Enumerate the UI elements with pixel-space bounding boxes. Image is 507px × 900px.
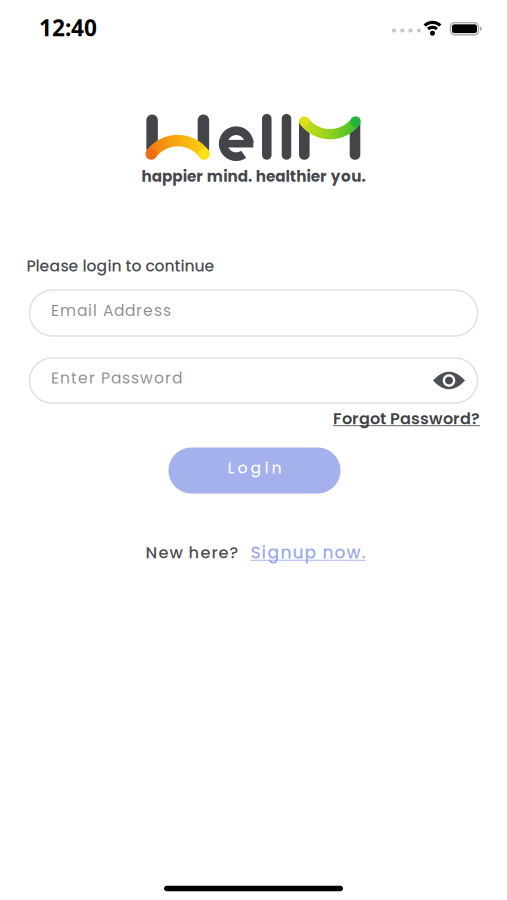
button[interactable]: S i g n u p n o w . bbox=[250, 540, 365, 564]
staticText: 12:40 bbox=[39, 12, 97, 42]
staticText: L o g i n bbox=[227, 457, 281, 479]
button[interactable]: E n t e r P a s s w o r d bbox=[29, 358, 477, 403]
staticText: happier mind. healthier you. bbox=[141, 166, 366, 187]
staticText: E n t e r P a s s w o r d bbox=[51, 367, 182, 389]
staticText: E m a i l A d d r e s s bbox=[51, 300, 171, 321]
staticText: Please login to continue bbox=[26, 255, 214, 277]
button[interactable]: E m a i l A d d r e s s bbox=[29, 290, 477, 336]
button[interactable]: L o g i n bbox=[168, 447, 340, 493]
staticText: N e w h e r e ? bbox=[145, 541, 238, 564]
staticText: S i g n u p n o w . bbox=[250, 540, 365, 564]
button[interactable]: Forgot Password? bbox=[333, 407, 480, 430]
staticText: Forgot Password? bbox=[333, 407, 480, 430]
